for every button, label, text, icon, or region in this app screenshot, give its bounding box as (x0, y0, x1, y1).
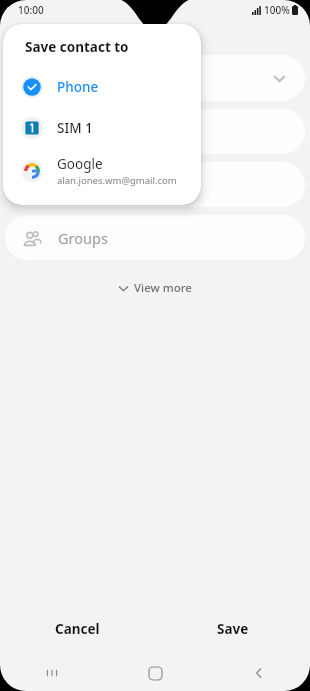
staticText: Cancel (55, 620, 100, 638)
button[interactable]: Google (3, 151, 201, 191)
button[interactable]: Phone (3, 70, 201, 104)
button[interactable]: Email (5, 162, 305, 207)
button[interactable]: Expand (259, 58, 299, 98)
button[interactable]: Phone (5, 109, 305, 154)
button[interactable]: Back (207, 655, 310, 691)
staticText: Email (58, 175, 96, 195)
staticText: Save (217, 620, 249, 638)
staticText: Phone (58, 122, 102, 142)
staticText: Groups (58, 228, 108, 248)
staticText: Phone (57, 78, 99, 96)
staticText: Google (57, 155, 103, 173)
button[interactable]: Recents (0, 655, 104, 691)
button[interactable]: SIM 1 (3, 111, 201, 145)
button[interactable]: Expand (5, 55, 305, 101)
staticText: View more (134, 280, 192, 296)
button[interactable]: Home (104, 655, 207, 691)
staticText: 10:00 (18, 3, 44, 17)
staticText: Save contact to (25, 38, 129, 56)
button[interactable]: Save (155, 603, 310, 655)
button[interactable]: Groups (5, 215, 305, 260)
button[interactable]: View more (108, 276, 202, 300)
staticText: 100% (264, 3, 290, 17)
staticText: SIM 1 (57, 119, 93, 137)
button[interactable]: Cancel (0, 603, 155, 655)
staticText: alan.jones.wm@gmail.com (57, 174, 177, 187)
